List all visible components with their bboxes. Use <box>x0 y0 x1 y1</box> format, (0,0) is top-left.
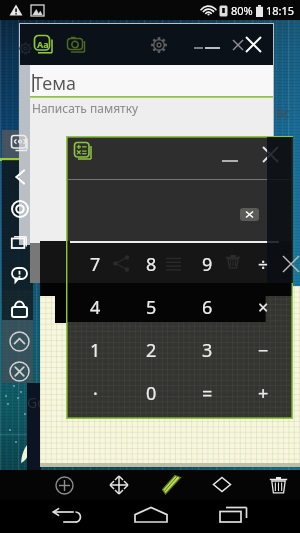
button[interactable]: Close sidebar <box>9 361 30 382</box>
button[interactable]: 3 <box>179 329 235 372</box>
staticText: 0 <box>146 381 157 406</box>
button[interactable]: 2 <box>123 329 179 372</box>
button[interactable]: Aa <box>34 35 53 54</box>
button[interactable]: 9 <box>179 243 235 286</box>
staticText: + <box>258 381 269 406</box>
button[interactable]: Window <box>11 235 28 249</box>
staticText: 2 <box>146 338 157 363</box>
button[interactable]: Lock <box>11 299 28 318</box>
staticText: 5 <box>146 295 157 320</box>
staticText: 7 <box>90 252 101 277</box>
button[interactable]: Close <box>262 146 279 163</box>
button[interactable]: · <box>68 372 123 415</box>
button[interactable]: 6 <box>179 286 235 329</box>
staticText: Вс <box>276 105 290 121</box>
button[interactable]: ÷ <box>235 243 291 286</box>
button[interactable]: Expand <box>9 331 30 352</box>
staticText: 80% <box>231 3 253 18</box>
button[interactable]: Help <box>11 267 28 285</box>
staticText: × <box>258 295 269 320</box>
staticText: Написать памятку <box>32 100 139 116</box>
staticText: Go <box>27 393 46 412</box>
button[interactable]: − <box>235 329 291 372</box>
button[interactable]: 8 <box>123 243 179 286</box>
button[interactable]: Add <box>51 252 69 270</box>
button[interactable]: Camera <box>67 35 86 54</box>
staticText: Тема <box>33 71 77 96</box>
button[interactable]: Close <box>245 36 262 53</box>
button[interactable]: Settings <box>151 37 167 53</box>
button[interactable]: Backspace <box>240 208 259 221</box>
button[interactable]: = <box>179 372 235 415</box>
button[interactable]: 1 <box>68 329 123 372</box>
staticText: 18:15 <box>266 3 295 18</box>
staticText: ÷ <box>258 252 269 277</box>
staticText: Aa <box>37 38 49 50</box>
button[interactable]: Pen <box>161 474 183 496</box>
button[interactable]: Move <box>109 475 129 495</box>
button[interactable]: Minimize <box>220 149 240 165</box>
staticText: − <box>258 338 269 363</box>
button[interactable]: Multi window <box>11 135 30 154</box>
staticText: 3 <box>202 338 213 363</box>
staticText: = <box>202 381 213 406</box>
button[interactable]: Minimize <box>193 37 221 53</box>
staticText: · <box>93 381 98 406</box>
button[interactable]: Close all <box>232 39 244 51</box>
button[interactable]: 4 <box>68 286 123 329</box>
button[interactable]: 0 <box>123 372 179 415</box>
staticText: 8 <box>146 252 157 277</box>
staticText: 1 <box>90 338 101 363</box>
button[interactable]: Back <box>14 169 27 185</box>
button[interactable]: 7 <box>68 243 123 286</box>
button[interactable]: Home <box>133 505 169 525</box>
staticText: 6 <box>202 295 213 320</box>
button[interactable]: Delete <box>269 475 288 494</box>
button[interactable]: × <box>235 286 291 329</box>
button[interactable]: + <box>235 372 291 415</box>
button[interactable]: Record <box>11 200 29 218</box>
button[interactable]: 5 <box>123 286 179 329</box>
button[interactable]: Recents <box>218 505 250 525</box>
staticText: 4 <box>90 295 101 320</box>
button[interactable]: Back <box>50 506 83 526</box>
staticText: 9 <box>202 252 213 277</box>
button[interactable]: Add <box>55 476 74 495</box>
button[interactable]: Eraser <box>212 476 232 493</box>
